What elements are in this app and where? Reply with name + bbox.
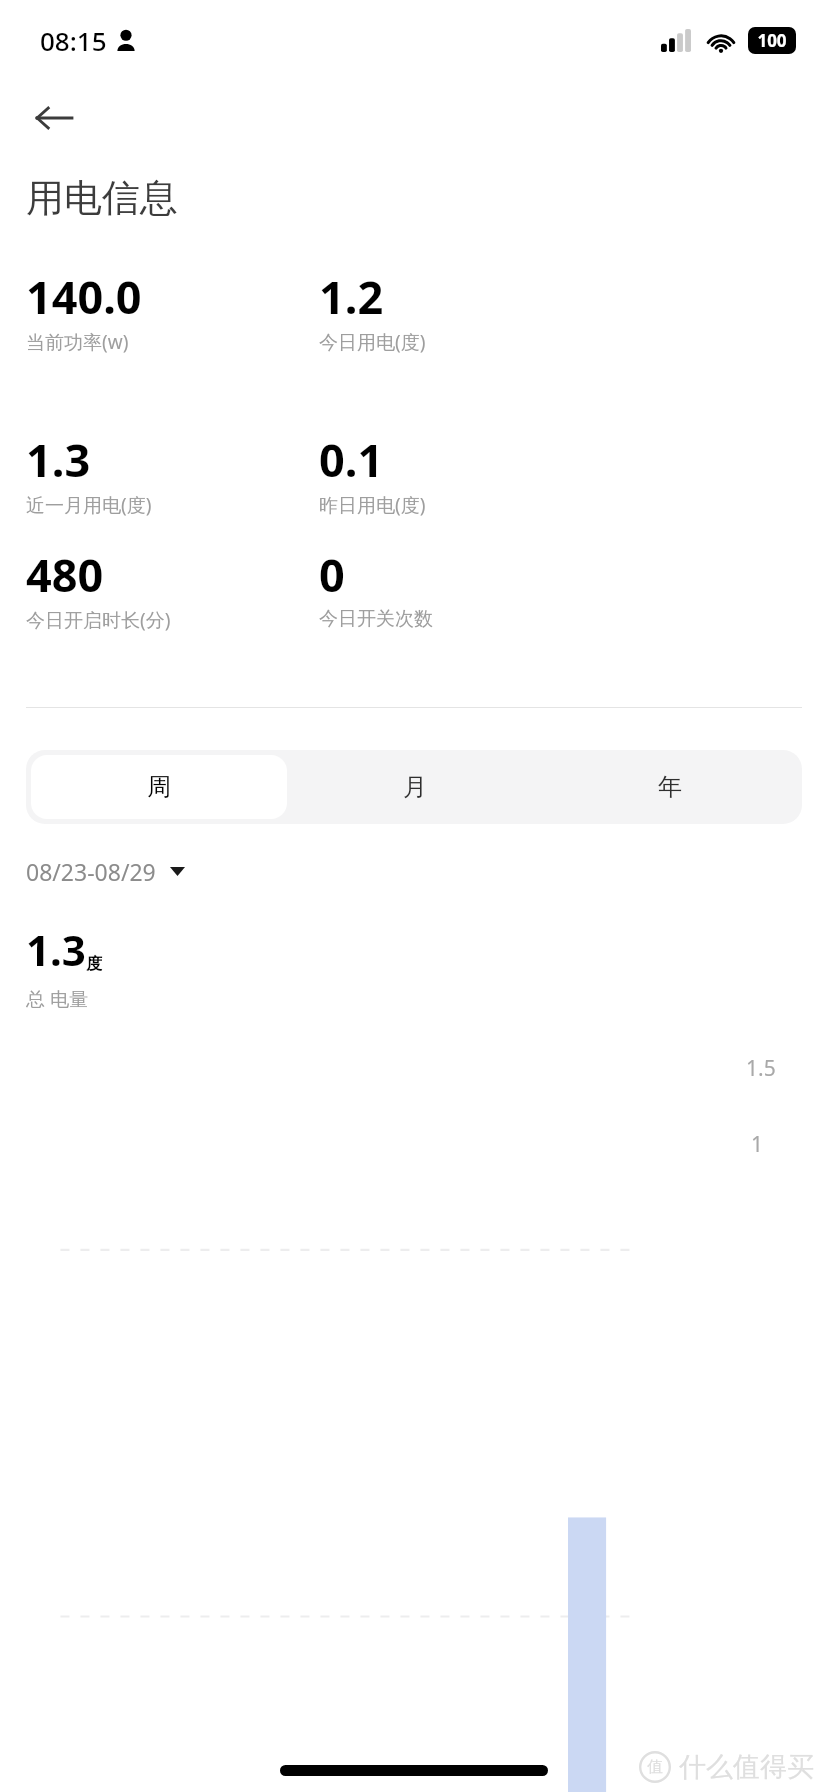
staticText: 总 电量	[26, 986, 88, 1012]
button[interactable]: 周	[31, 755, 287, 819]
staticText: 当前功率(w)	[26, 329, 129, 355]
staticText: 1.3	[26, 921, 86, 978]
staticText: 0	[319, 544, 345, 605]
staticText: 今日开关次数	[319, 607, 433, 631]
staticText: 周	[147, 772, 171, 802]
button[interactable]: 年	[542, 755, 797, 819]
staticText: 1	[751, 1130, 764, 1159]
staticText: 08/23-08/29	[26, 856, 156, 887]
staticText: 度	[86, 954, 102, 974]
staticText: 08:15	[40, 23, 107, 58]
staticText: 什么值得买	[679, 1750, 814, 1784]
staticText: 100	[757, 29, 787, 52]
staticText: 480	[26, 544, 104, 605]
button[interactable]: Back	[24, 88, 84, 148]
staticText: 年	[658, 772, 682, 802]
staticText: 用电信息	[26, 174, 178, 222]
staticText: 1.5	[746, 1054, 776, 1083]
staticText: 1.3	[26, 429, 91, 490]
staticText: 0.1	[319, 429, 384, 490]
staticText: 今日开启时长(分)	[26, 607, 171, 633]
staticText: 昨日用电(度)	[319, 492, 426, 518]
staticText: 近一月用电(度)	[26, 492, 152, 518]
staticText: 今日用电(度)	[319, 329, 426, 355]
staticText: 1.2	[319, 266, 384, 327]
staticText: 值	[647, 1757, 663, 1777]
button[interactable]: 月	[287, 755, 542, 819]
staticText: 140.0	[26, 266, 142, 327]
staticText: 月	[403, 772, 427, 802]
button[interactable]: 08/23-08/29	[20, 848, 191, 895]
